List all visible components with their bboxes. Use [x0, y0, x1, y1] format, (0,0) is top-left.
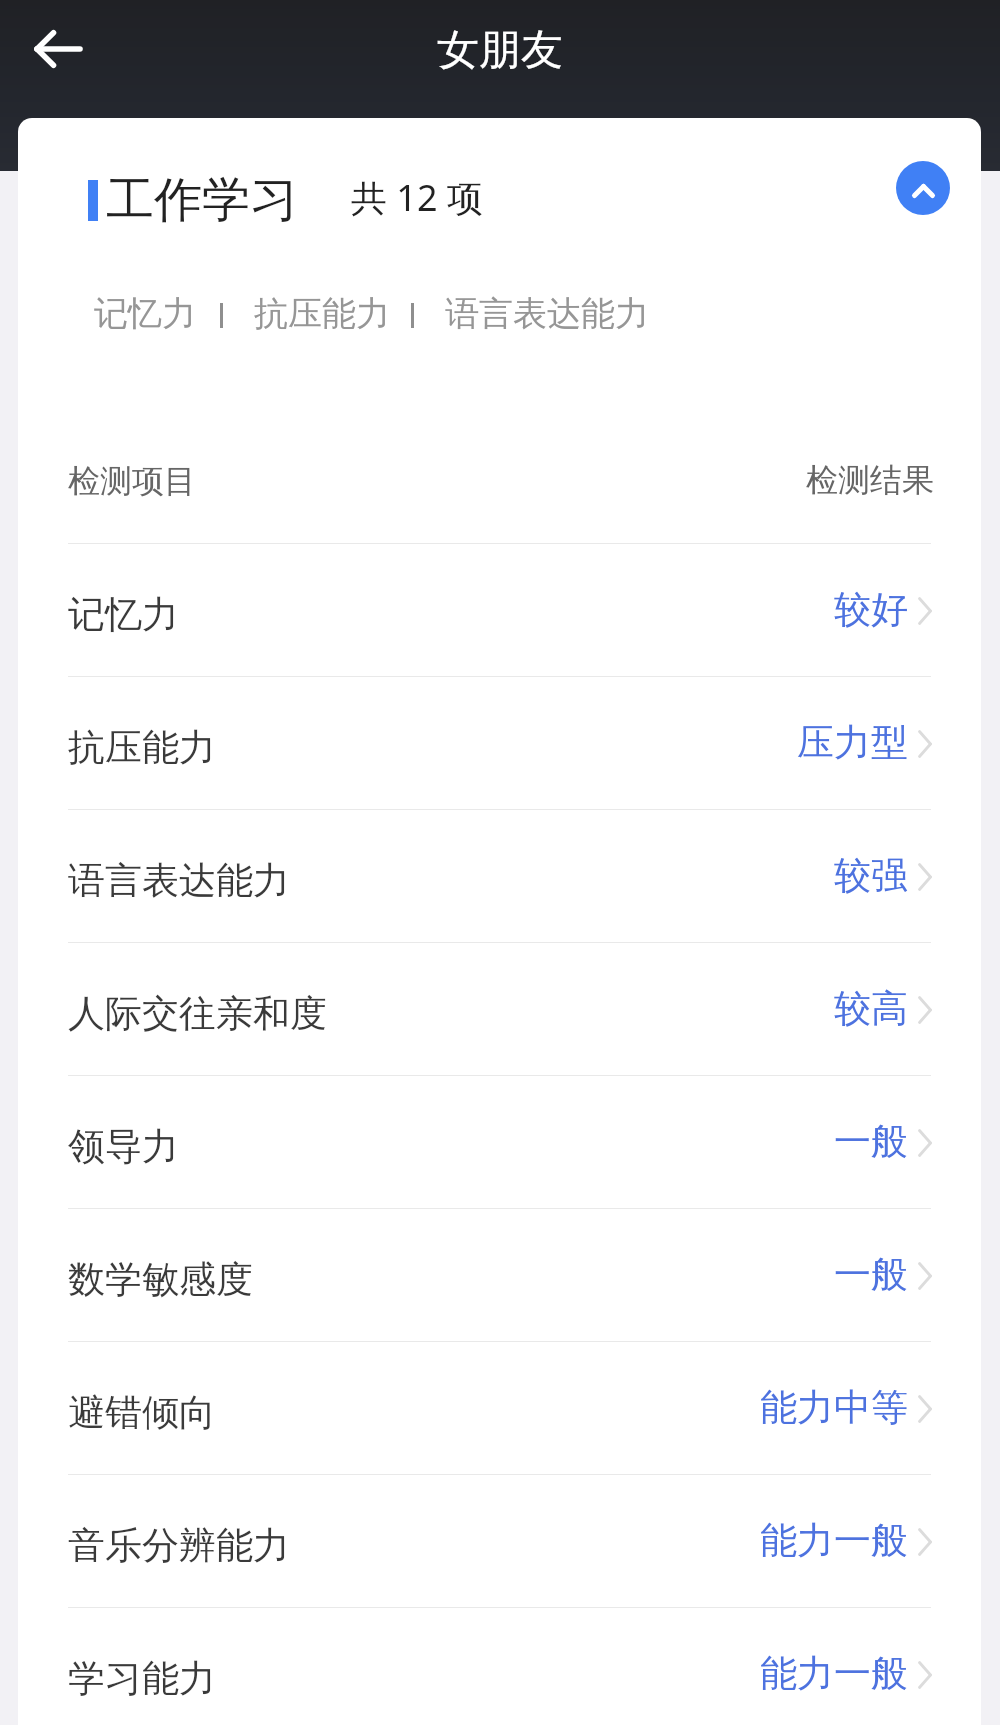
staticText: 语言表达能力 [68, 857, 290, 904]
staticText: 数学敏感度 [68, 1256, 253, 1303]
staticText: 较强 [834, 852, 908, 899]
button[interactable]: 记忆力 [18, 544, 981, 676]
button[interactable]: 避错倾向 [18, 1342, 981, 1474]
staticText: 检测结果 [806, 460, 934, 500]
staticText: 人际交往亲和度 [68, 990, 327, 1037]
staticText: 能力一般 [760, 1517, 908, 1564]
staticText: 领导力 [68, 1123, 179, 1170]
button[interactable]: 音乐分辨能力 [18, 1475, 981, 1607]
staticText: 语言表达能力 [445, 292, 649, 335]
staticText: 一般 [834, 1251, 908, 1298]
staticText: 能力一般 [760, 1650, 908, 1697]
button[interactable]: Back [13, 0, 103, 97]
staticText: 一般 [834, 1118, 908, 1165]
button[interactable]: 语言表达能力 [18, 810, 981, 942]
button[interactable]: 领导力 [18, 1076, 981, 1208]
staticText: 压力型 [797, 719, 908, 766]
button[interactable]: 抗压能力 [18, 677, 981, 809]
button[interactable]: 人际交往亲和度 [18, 943, 981, 1075]
staticText: 记忆力 [68, 591, 179, 638]
staticText: 避错倾向 [68, 1389, 216, 1436]
staticText: 音乐分辨能力 [68, 1522, 290, 1569]
staticText: 较高 [834, 985, 908, 1032]
staticText: 较好 [834, 586, 908, 633]
staticText: 女朋友 [437, 24, 563, 77]
button[interactable]: 数学敏感度 [18, 1209, 981, 1341]
staticText: 学习能力 [68, 1655, 216, 1702]
button[interactable]: Collapse section [896, 161, 950, 215]
staticText: 抗压能力 [68, 724, 216, 771]
staticText: 抗压能力 [254, 292, 390, 335]
staticText: 检测项目 [68, 461, 196, 501]
staticText: 能力中等 [760, 1384, 908, 1431]
staticText: 记忆力 [94, 292, 196, 335]
staticText: 工作学习 [106, 170, 298, 230]
staticText: 共 12 项 [351, 173, 483, 222]
button[interactable]: 学习能力 [18, 1608, 981, 1725]
